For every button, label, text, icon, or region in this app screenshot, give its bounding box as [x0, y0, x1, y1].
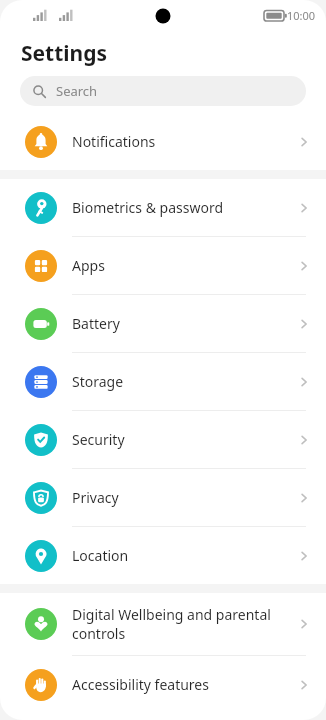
other: Accessibility features [25, 669, 57, 701]
staticText: Storage [72, 372, 286, 391]
other: Battery [25, 308, 57, 340]
staticText: Digital Wellbeing and parental controls [72, 605, 286, 643]
button[interactable]: Digital Wellbeing and parental controls [0, 593, 326, 655]
button[interactable]: Security [0, 411, 326, 468]
other: Security [25, 424, 57, 456]
staticText: Privacy [72, 488, 286, 507]
staticText: Apps [72, 256, 286, 275]
staticText: Location [72, 546, 286, 565]
staticText: Search [56, 82, 98, 100]
button[interactable]: Biometrics and password [0, 179, 326, 236]
staticText: Security [72, 430, 286, 449]
staticText: Biometrics & password [72, 198, 286, 217]
staticText: Battery [72, 314, 286, 333]
staticText: Settings [21, 39, 108, 68]
other: Biometrics and password [25, 192, 57, 224]
button[interactable]: Apps [0, 237, 326, 294]
other: Apps [25, 250, 57, 282]
staticText: Notifications [72, 132, 286, 151]
button[interactable]: Privacy [0, 469, 326, 526]
button[interactable]: Storage [0, 353, 326, 410]
other: Digital Wellbeing and parental controls [25, 608, 57, 640]
other: Privacy [25, 482, 57, 514]
button[interactable]: Battery [0, 295, 326, 352]
button[interactable]: Notifications [0, 113, 326, 170]
button[interactable]: Accessibility features [0, 656, 326, 713]
staticText: Accessibility features [72, 675, 286, 694]
other: Location [25, 540, 57, 572]
button[interactable]: Location [0, 527, 326, 584]
button[interactable]: Search [20, 76, 306, 106]
other: Notifications [25, 126, 57, 158]
staticText: 10:00 [287, 8, 316, 23]
other: Storage [25, 366, 57, 398]
